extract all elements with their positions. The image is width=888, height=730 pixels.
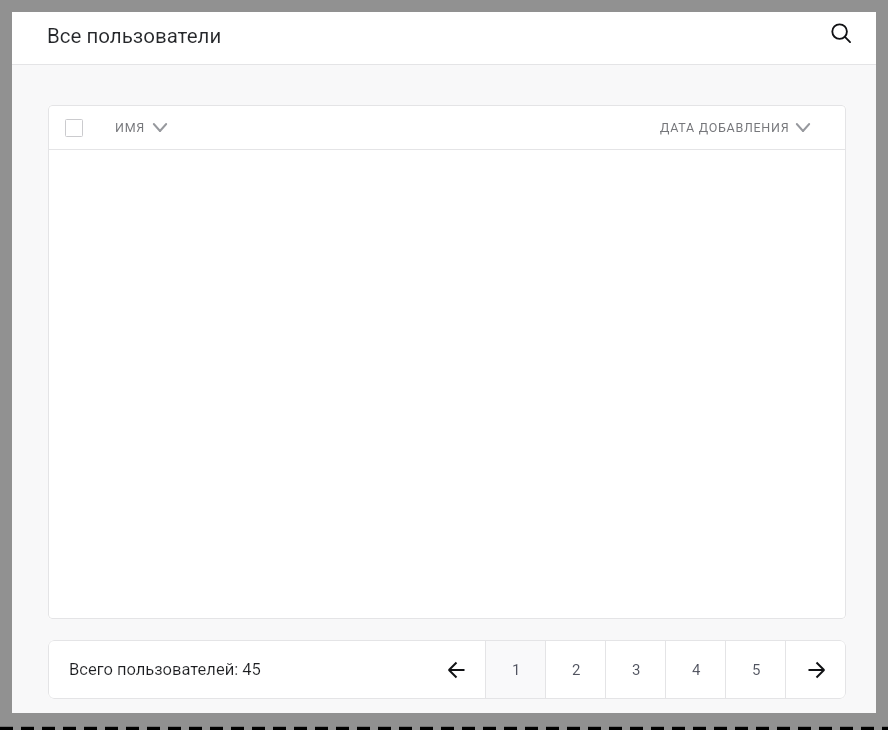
- button[interactable]: Previous page: [426, 640, 486, 699]
- staticText: 3: [632, 661, 641, 679]
- button[interactable]: Next page: [786, 640, 846, 699]
- staticText: 4: [692, 661, 701, 679]
- button[interactable]: 4: [666, 640, 726, 699]
- staticText: ДАТА ДОБАВЛЕНИЯ: [660, 120, 790, 135]
- button[interactable]: 1: [486, 640, 546, 699]
- button[interactable]: 3: [606, 640, 666, 699]
- button[interactable]: Search: [824, 16, 860, 52]
- button[interactable]: 5: [726, 640, 786, 699]
- staticText: Всего пользователей: 45: [69, 660, 261, 679]
- staticText: 2: [572, 661, 581, 679]
- button[interactable]: ИМЯ: [115, 120, 167, 135]
- staticText: Все пользователи: [47, 24, 222, 48]
- button[interactable]: Select all: [65, 119, 83, 137]
- staticText: 5: [752, 661, 761, 679]
- staticText: ИМЯ: [115, 120, 145, 135]
- staticText: 1: [512, 661, 521, 679]
- button[interactable]: 2: [546, 640, 606, 699]
- button[interactable]: ДАТА ДОБАВЛЕНИЯ: [660, 120, 810, 135]
